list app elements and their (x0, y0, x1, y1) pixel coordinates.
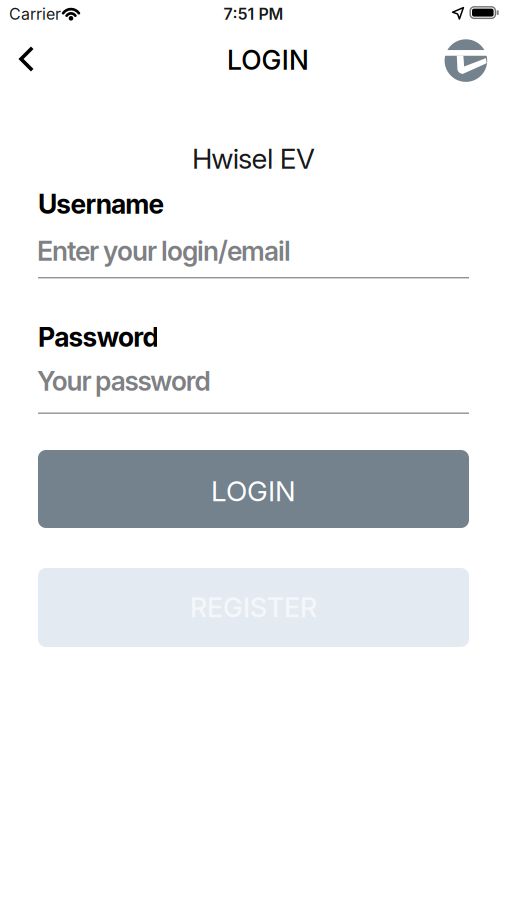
button[interactable]: LOGIN (38, 450, 469, 528)
button[interactable]: Back (9, 36, 45, 82)
staticText: Your password (37, 365, 211, 397)
staticText: REGISTER (190, 592, 317, 623)
staticText: LOGIN (227, 44, 309, 76)
staticText: Username (38, 188, 164, 220)
staticText: Carrier (9, 5, 61, 23)
staticText: 7:51 PM (223, 5, 283, 23)
staticText: Hwisel EV (192, 142, 315, 175)
staticText: Enter your login/email (37, 235, 291, 267)
button[interactable]: Hwisel (445, 39, 487, 82)
staticText: LOGIN (211, 474, 296, 507)
staticText: Password (38, 321, 159, 353)
